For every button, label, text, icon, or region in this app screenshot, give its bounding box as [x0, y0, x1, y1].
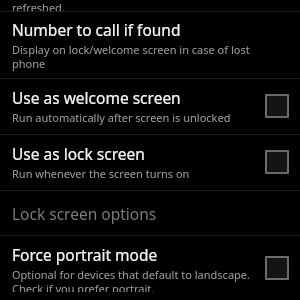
button[interactable]: Force portrait mode [0, 236, 300, 300]
staticText: Number to call if found [12, 19, 181, 40]
button[interactable]: Use as lock screen [0, 135, 300, 190]
button[interactable]: Use as welcome screen [265, 94, 289, 118]
staticText: Force portrait mode [12, 244, 158, 265]
staticText: Run automatically after screen is unlock… [12, 110, 231, 125]
button[interactable]: Use as welcome screen [0, 79, 300, 134]
staticText: Lock screen options [12, 203, 157, 224]
button[interactable]: refreshed. [0, 0, 300, 11]
staticText: Optional for devices that default to lan… [12, 267, 250, 292]
staticText: refreshed. [12, 0, 65, 11]
button[interactable]: Number to call if found [0, 12, 300, 78]
staticText: Use as lock screen [12, 143, 145, 164]
staticText: Run whenever the screen turns on [12, 166, 190, 181]
button[interactable]: Force portrait mode [265, 256, 289, 280]
staticText: Display on lock/welcome screen in case o… [12, 42, 250, 71]
staticText: Use as welcome screen [12, 87, 181, 108]
button[interactable]: Use as lock screen [265, 150, 289, 174]
